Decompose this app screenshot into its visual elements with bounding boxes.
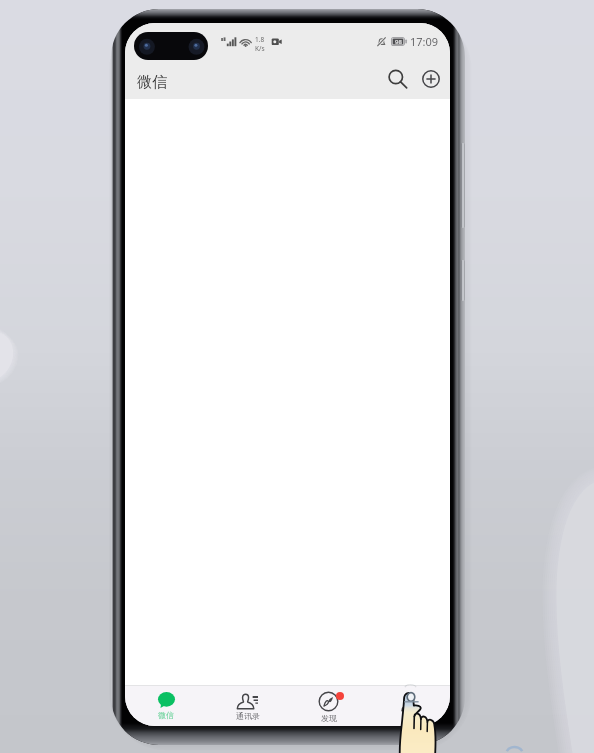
button[interactable]: Search [379,61,415,97]
staticText: 微信 [137,73,167,92]
staticText: 通讯录 [236,711,260,721]
staticText: 我 [406,714,414,724]
other: Tap [0,0,594,753]
button[interactable]: Add [413,61,449,97]
staticText: 发现 [321,713,337,723]
staticText: 微信 [158,710,174,720]
button[interactable]: 发现 [288,686,369,726]
staticText: 98 [395,38,402,46]
staticText: 1.8 [255,35,265,44]
staticText: K/s [255,44,265,53]
button[interactable]: 通讯录 [207,686,288,726]
button[interactable]: 微信 [125,686,207,726]
staticText: 17:09 [410,34,439,49]
button[interactable]: 我 [369,686,450,726]
